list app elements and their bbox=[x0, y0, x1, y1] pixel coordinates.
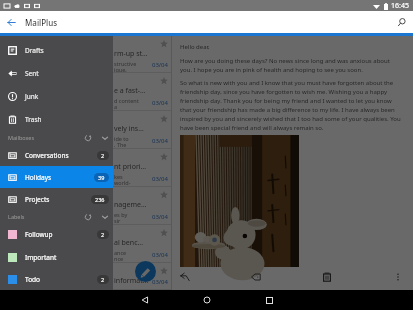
button[interactable]: Holidays bbox=[0, 166, 113, 188]
staticText: ide to . The bbox=[114, 135, 129, 148]
staticText: Labels bbox=[8, 213, 25, 220]
staticText: Todo bbox=[25, 275, 41, 284]
button[interactable]: Tag bbox=[245, 266, 267, 288]
staticText: Holidays bbox=[25, 173, 52, 182]
staticText: nageme… bbox=[114, 200, 147, 210]
button[interactable]: Followup bbox=[0, 223, 113, 246]
button[interactable]: Back bbox=[114, 290, 176, 310]
staticText: Conversations bbox=[25, 151, 69, 160]
button[interactable]: Projects bbox=[0, 188, 113, 210]
button[interactable]: al benc… bbox=[113, 225, 171, 263]
staticText: 03/04 bbox=[152, 278, 168, 286]
staticText: MailPlus bbox=[25, 17, 58, 28]
staticText: 2 bbox=[101, 276, 105, 283]
button[interactable]: e a fast-… bbox=[113, 73, 171, 111]
button[interactable]: Compose bbox=[135, 261, 156, 282]
button[interactable]: Reply bbox=[174, 266, 196, 288]
button[interactable]: Back bbox=[0, 11, 22, 33]
button[interactable]: rm-up st… bbox=[113, 36, 171, 73]
button[interactable]: Collapse bbox=[101, 213, 109, 221]
button[interactable]: Search bbox=[389, 11, 413, 33]
button[interactable]: Todo bbox=[0, 269, 113, 290]
staticText: Important bbox=[25, 253, 57, 262]
button[interactable]: More options bbox=[387, 266, 409, 288]
staticText: Sent bbox=[25, 69, 39, 78]
staticText: 2 bbox=[101, 231, 105, 238]
button[interactable]: Refresh bbox=[84, 213, 92, 221]
staticText: 236 bbox=[95, 196, 105, 203]
staticText: es by sir bbox=[114, 211, 128, 224]
staticText: 03/04 bbox=[152, 175, 168, 183]
button[interactable]: nageme… bbox=[113, 187, 171, 225]
staticText: Followup bbox=[25, 230, 53, 239]
staticText: 03/04 bbox=[152, 213, 168, 221]
button[interactable]: vely ins… bbox=[113, 111, 171, 149]
staticText: 03/04 bbox=[152, 61, 168, 69]
staticText: 16:45 bbox=[391, 1, 409, 11]
button[interactable]: Collapse bbox=[101, 134, 109, 142]
staticText: Trash bbox=[25, 115, 42, 124]
staticText: nt priori… bbox=[114, 162, 147, 172]
staticText: 39 bbox=[98, 174, 105, 181]
staticText: 2 bbox=[101, 152, 105, 159]
staticText: d content a bbox=[114, 97, 139, 110]
staticText: 03/04 bbox=[152, 99, 168, 107]
staticText: 03/04 bbox=[152, 137, 168, 145]
button[interactable]: Conversations bbox=[0, 144, 113, 166]
button[interactable]: Drafts bbox=[0, 39, 113, 62]
staticText: How are you doing these days? No news si… bbox=[180, 57, 403, 74]
button[interactable]: Important bbox=[0, 246, 113, 269]
staticText: kes world- bbox=[114, 173, 131, 186]
staticText: Hello dear, bbox=[180, 43, 210, 51]
staticText: informat… bbox=[114, 276, 149, 286]
button[interactable]: Junk bbox=[0, 85, 113, 108]
staticText: Mailboxes bbox=[8, 134, 35, 141]
staticText: Projects bbox=[25, 195, 50, 204]
staticText: rm-up st… bbox=[114, 49, 148, 59]
staticText: 03/04 bbox=[152, 251, 168, 259]
staticText: vely ins… bbox=[114, 124, 144, 134]
staticText: e a fast-… bbox=[114, 86, 146, 96]
button[interactable]: Home bbox=[176, 290, 238, 310]
staticText: structive ique, bbox=[114, 60, 137, 72]
button[interactable]: nt priori… bbox=[113, 149, 171, 187]
button[interactable]: Recent apps bbox=[238, 290, 300, 310]
staticText: Junk bbox=[25, 92, 39, 101]
button[interactable]: Trash bbox=[0, 108, 113, 131]
staticText: al benc… bbox=[114, 238, 144, 248]
staticText: So what is new with you and I know that … bbox=[180, 79, 403, 132]
staticText: ance nce bbox=[114, 249, 127, 262]
button[interactable]: Delete bbox=[316, 266, 338, 288]
button[interactable]: Sent bbox=[0, 62, 113, 85]
button[interactable]: Refresh bbox=[84, 134, 92, 142]
staticText: Drafts bbox=[25, 46, 44, 55]
button[interactable]: informat… bbox=[113, 263, 171, 290]
